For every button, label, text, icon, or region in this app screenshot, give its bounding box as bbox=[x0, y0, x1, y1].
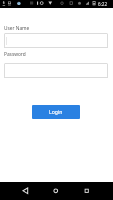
staticText: 6:22 bbox=[98, 1, 108, 7]
button[interactable]: Home bbox=[38, 182, 75, 200]
button[interactable]: Password input bbox=[4, 63, 108, 78]
button[interactable]: Recent apps bbox=[76, 182, 113, 200]
button[interactable]: Login bbox=[32, 105, 80, 119]
staticText: Login bbox=[49, 109, 63, 116]
button[interactable]: User name input bbox=[4, 33, 108, 48]
staticText: Password bbox=[4, 51, 26, 58]
button[interactable]: Back bbox=[0, 182, 37, 200]
staticText: User Name bbox=[4, 25, 30, 32]
